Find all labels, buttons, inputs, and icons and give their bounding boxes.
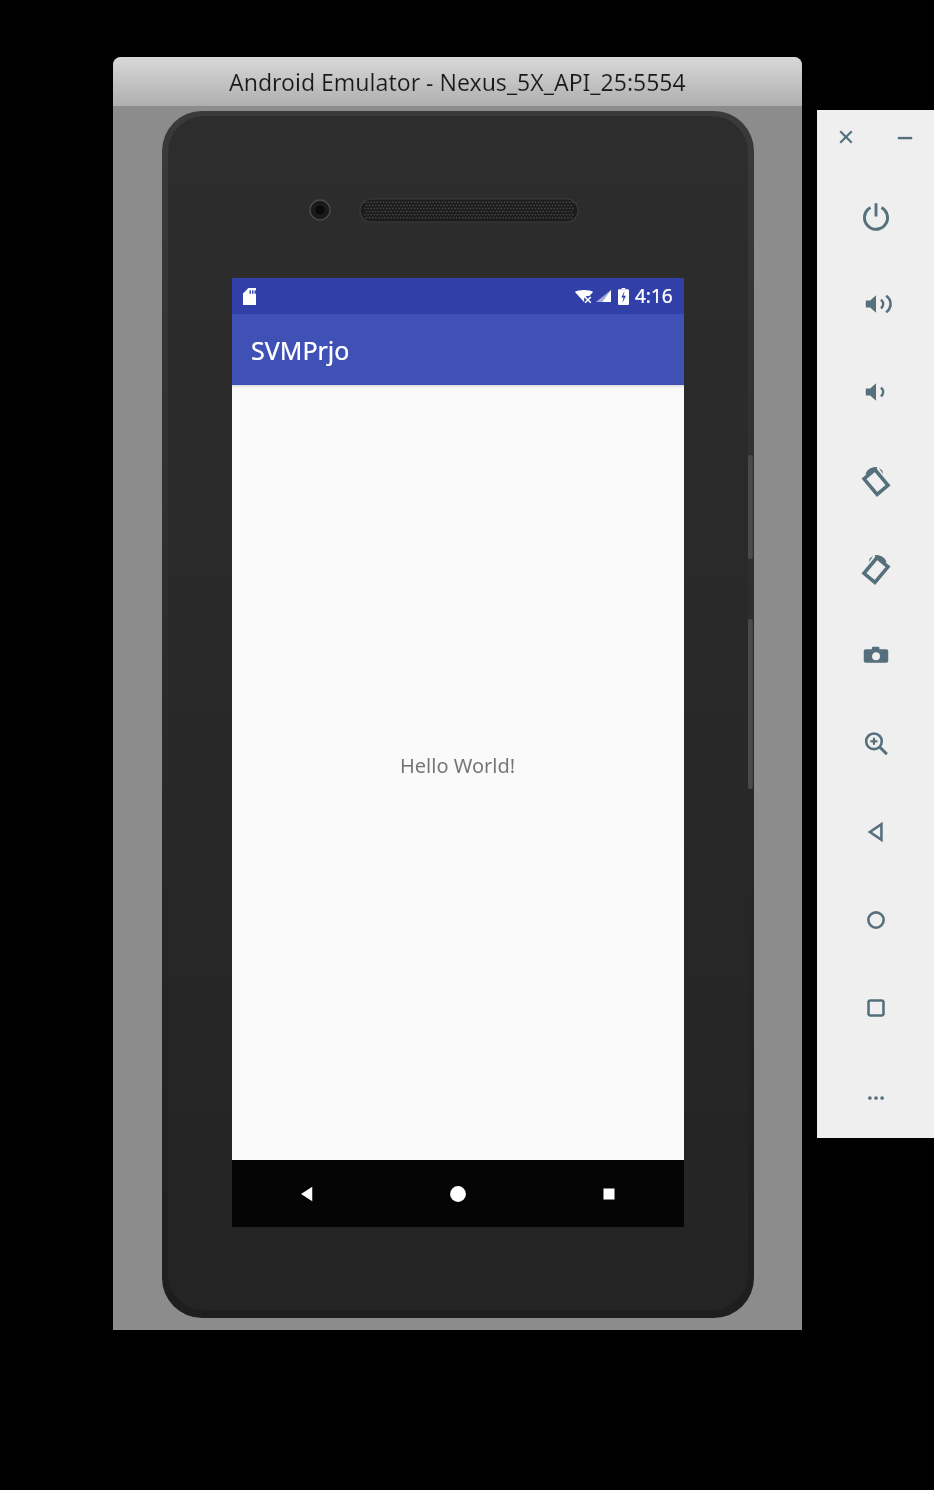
staticText: 4:16 <box>635 283 673 309</box>
button[interactable]: Recent apps <box>817 964 934 1052</box>
button[interactable]: Volume up <box>817 260 934 348</box>
staticText: SVMPrjo <box>251 333 350 367</box>
button[interactable]: Home <box>817 876 934 964</box>
button[interactable]: Zoom <box>817 700 934 788</box>
button[interactable]: More <box>817 1058 934 1138</box>
button[interactable]: Minimize <box>875 110 934 164</box>
button[interactable]: Back <box>817 788 934 876</box>
button[interactable]: Home <box>382 1160 533 1227</box>
button[interactable]: Take screenshot <box>817 612 934 700</box>
button[interactable]: Close <box>817 110 875 164</box>
button[interactable]: Rotate left <box>817 436 934 524</box>
button[interactable]: Volume down <box>817 348 934 436</box>
button[interactable]: Rotate right <box>817 524 934 612</box>
button[interactable]: Back <box>232 1160 382 1227</box>
staticText: Hello World! <box>400 752 516 779</box>
button[interactable]: Recent apps <box>533 1160 684 1227</box>
button[interactable]: Power <box>817 172 934 260</box>
staticText: Android Emulator - Nexus_5X_API_25:5554 <box>229 66 686 97</box>
